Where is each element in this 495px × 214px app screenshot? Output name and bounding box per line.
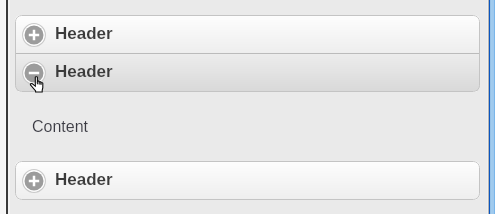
- staticText: Content: [32, 118, 89, 136]
- button[interactable]: Expand section: [15, 162, 480, 199]
- button[interactable]: Expand section: [15, 16, 480, 53]
- other: Collapse section: [22, 61, 46, 85]
- other: Expand section: [22, 169, 46, 193]
- staticText: Header: [55, 170, 113, 189]
- staticText: Header: [55, 62, 113, 81]
- other: Expand section: [22, 23, 46, 47]
- button[interactable]: Collapse section: [15, 54, 480, 91]
- staticText: Header: [55, 24, 113, 43]
